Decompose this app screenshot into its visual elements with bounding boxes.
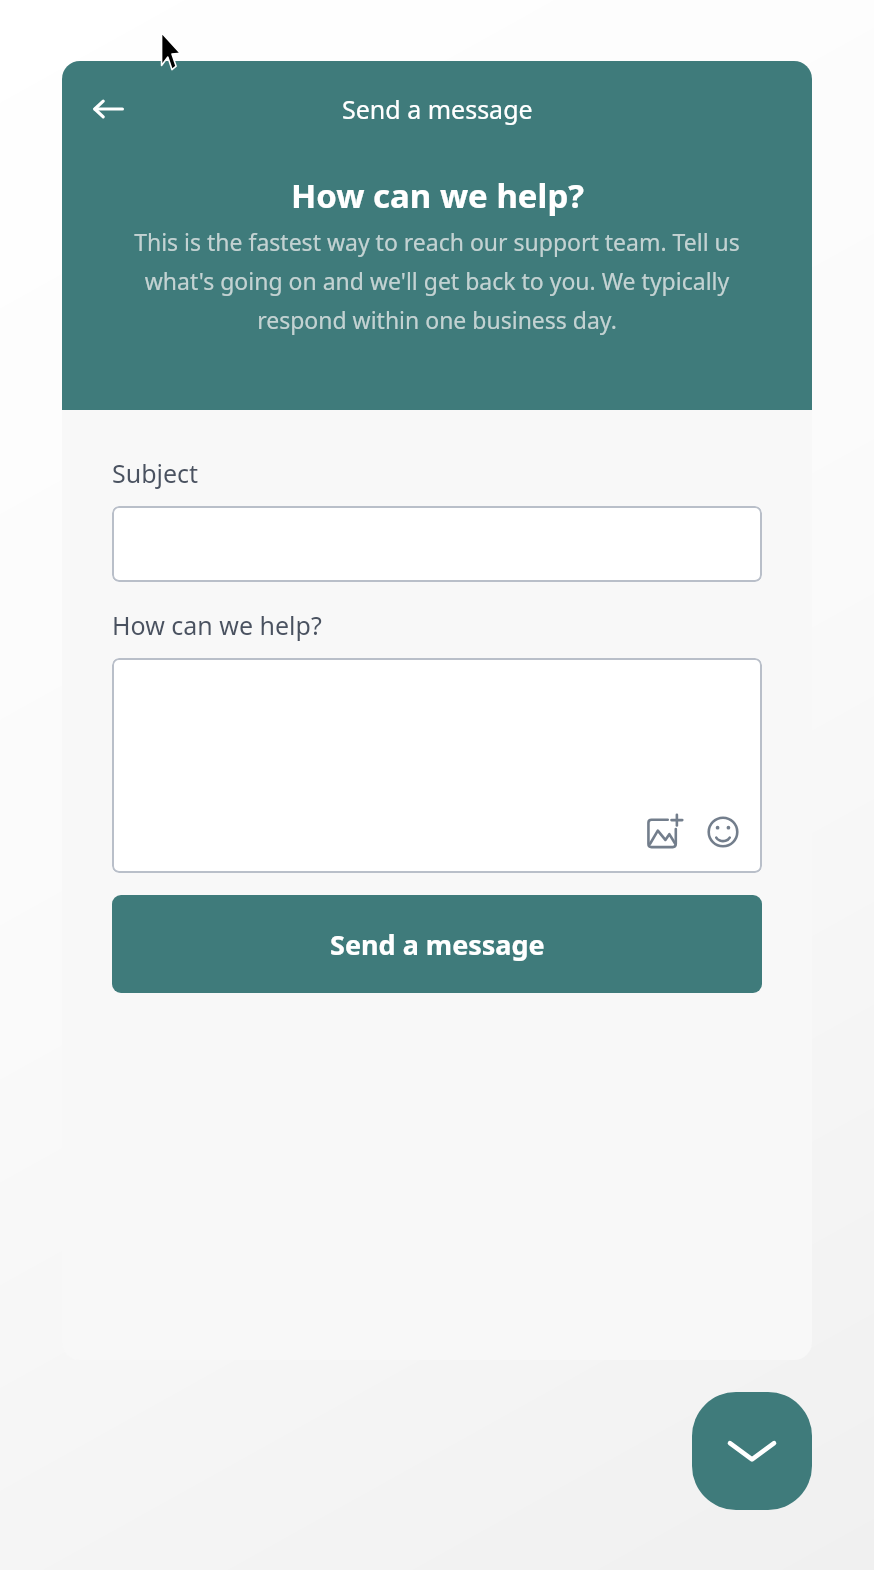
button[interactable]: Send a message (112, 895, 762, 993)
button[interactable]: Add image (112, 658, 762, 873)
staticText: This is the fastest way to reach our sup… (100, 226, 774, 335)
button[interactable] (112, 506, 762, 582)
staticText: How can we help? (112, 608, 322, 642)
staticText: How can we help? (291, 173, 584, 218)
button[interactable]: Add image (640, 807, 690, 857)
staticText: Send a message (330, 926, 545, 963)
button[interactable]: Back (82, 83, 134, 135)
button[interactable]: Insert emoji (698, 807, 748, 857)
staticText: Send a message (342, 92, 533, 126)
staticText: Subject (112, 456, 199, 490)
button[interactable]: Close chat (692, 1392, 812, 1510)
